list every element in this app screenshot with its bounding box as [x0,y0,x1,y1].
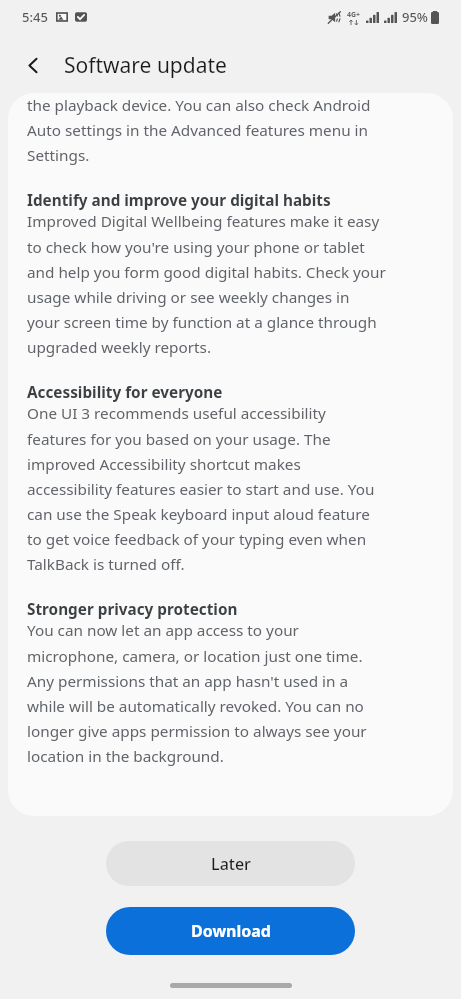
staticText: Later [211,853,251,875]
staticText: One UI 3 recommends useful accessibility… [27,403,375,574]
staticText: Improved Digital Wellbeing features make… [27,211,386,357]
staticText: Android Auto will run directly on the sc… [27,93,371,165]
button[interactable]: Back [12,44,54,86]
staticText: 4G+ [347,10,361,20]
button[interactable]: Later [106,841,355,886]
staticText: 5:45 [22,8,48,26]
staticText: Identify and improve your digital habits [27,190,331,211]
staticText: Software update [64,51,227,80]
staticText: Accessibility for everyone [27,382,223,403]
staticText: 95% [402,8,428,26]
staticText: Stronger privacy protection [27,599,238,620]
staticText: Download [191,920,271,942]
button[interactable]: Download [106,907,355,955]
staticText: You can now let an app access to your mi… [27,620,367,766]
